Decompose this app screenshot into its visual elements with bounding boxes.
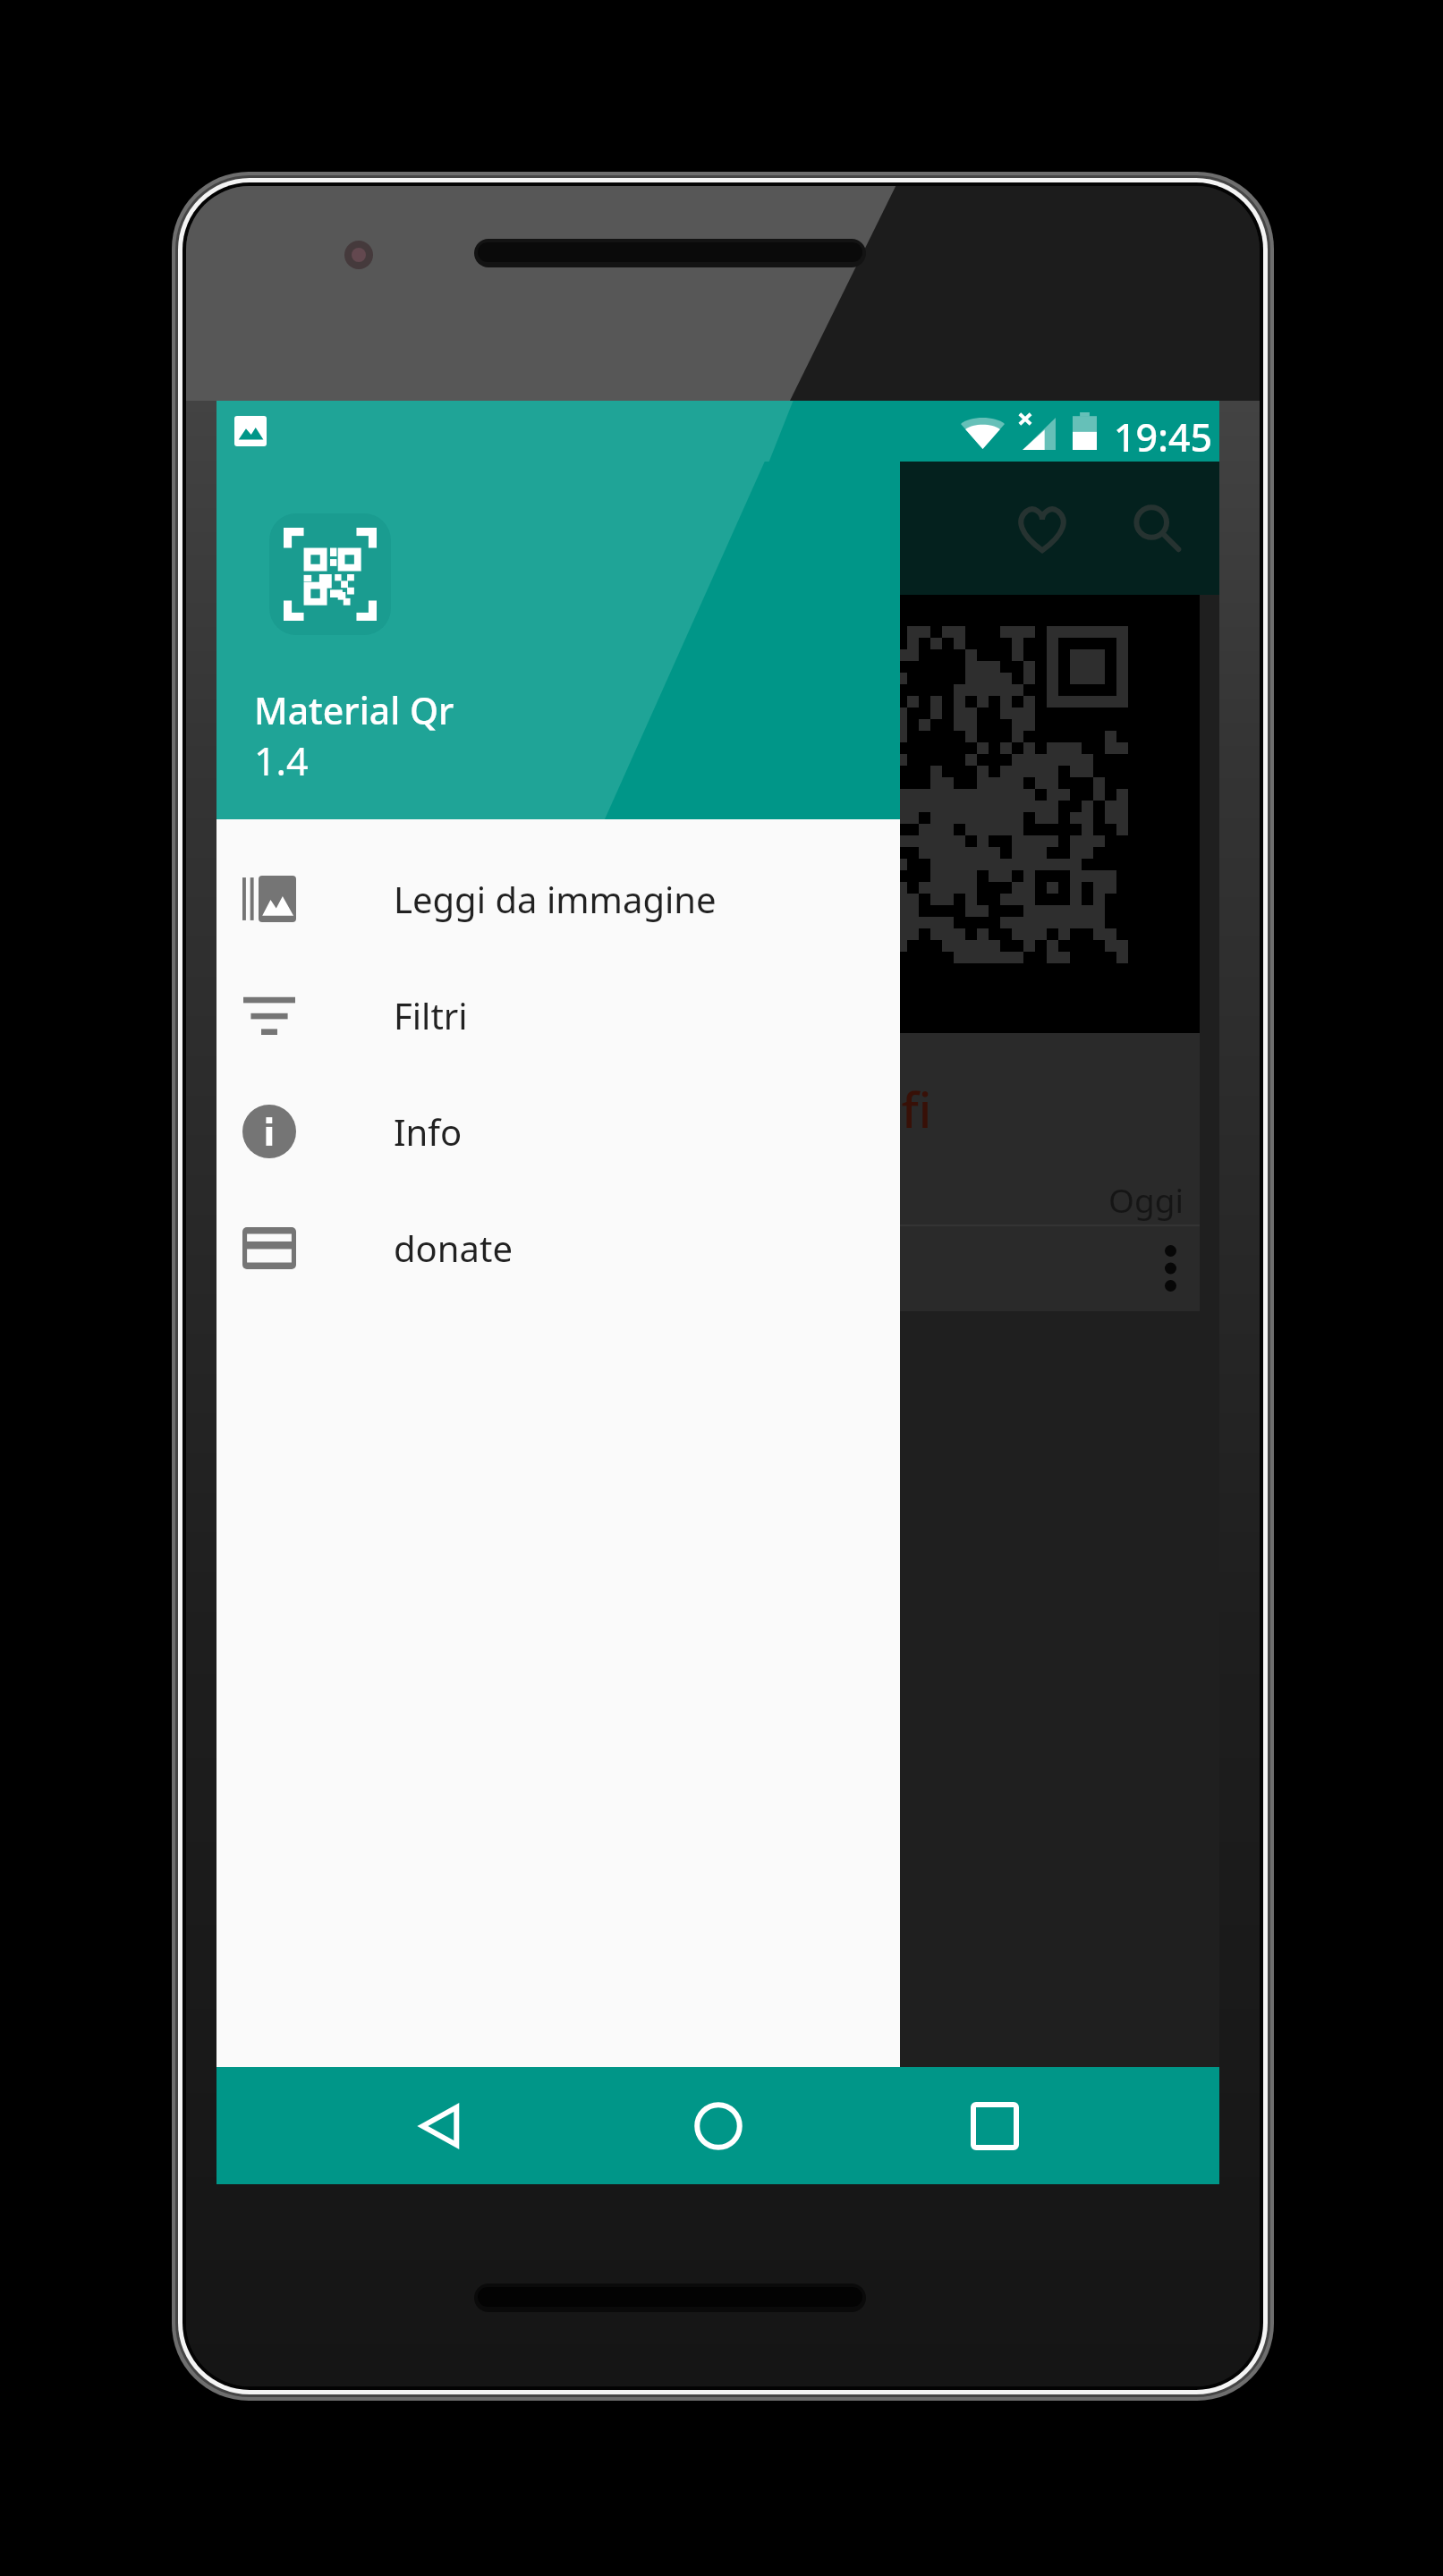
- staticText: Filtri: [394, 991, 468, 1039]
- button[interactable]: Back: [388, 2073, 494, 2179]
- staticText: Material Qr: [254, 685, 454, 735]
- button[interactable]: Filtri: [216, 957, 900, 1073]
- button[interactable]: More options: [1105, 1221, 1200, 1316]
- staticText: Wifi: [843, 1076, 932, 1142]
- button[interactable]: Home: [666, 2073, 771, 2179]
- button[interactable]: Material Qr: [216, 462, 900, 819]
- button[interactable]: Leggi da immagine: [216, 841, 900, 957]
- staticText: Oggi: [1108, 1177, 1184, 1222]
- staticText: donate: [394, 1224, 513, 1272]
- staticText: 1.4: [254, 734, 309, 787]
- button[interactable]: Info: [216, 1073, 900, 1190]
- button[interactable]: donate: [216, 1190, 900, 1306]
- button[interactable]: Wifi: [216, 595, 1200, 1311]
- staticText: Info: [394, 1107, 463, 1156]
- button[interactable]: Recent apps: [942, 2073, 1048, 2179]
- staticText: Leggi da immagine: [394, 875, 717, 923]
- button[interactable]: Search: [1112, 484, 1201, 573]
- staticText: 19:45: [1114, 411, 1213, 463]
- button[interactable]: Favourites: [997, 484, 1087, 573]
